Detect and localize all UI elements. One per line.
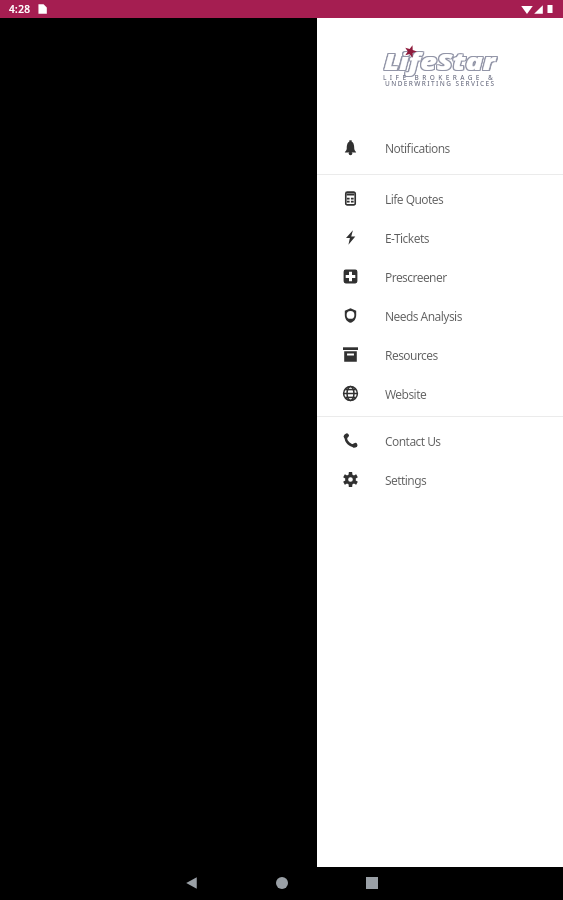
staticText: LifeStar bbox=[383, 46, 495, 76]
button[interactable]: Life Quotes bbox=[317, 179, 563, 218]
button[interactable]: Back bbox=[174, 866, 208, 899]
button[interactable]: Notifications bbox=[317, 128, 563, 167]
staticText: LifeStar bbox=[384, 46, 496, 76]
button[interactable]: Contact Us bbox=[317, 421, 563, 460]
staticText: Settings bbox=[385, 472, 427, 488]
button[interactable]: Needs Analysis bbox=[317, 296, 563, 335]
staticText: LifeStar bbox=[385, 46, 497, 76]
staticText: Website bbox=[385, 386, 427, 402]
staticText: Notifications bbox=[385, 140, 450, 156]
staticText: Needs Analysis bbox=[385, 308, 462, 324]
staticText: E-Tickets bbox=[385, 230, 429, 246]
staticText: LifeStar bbox=[384, 45, 496, 75]
button[interactable]: Settings bbox=[317, 460, 563, 499]
staticText: Prescreener bbox=[385, 269, 447, 285]
button[interactable]: Recents bbox=[355, 866, 389, 899]
staticText: Resources bbox=[385, 347, 438, 363]
staticText: LifeStar bbox=[383, 47, 495, 77]
staticText: LifeStar bbox=[385, 45, 497, 75]
staticText: 4:28 bbox=[9, 2, 31, 16]
button[interactable]: Resources bbox=[317, 335, 563, 374]
staticText: UNDERWRITING SERVICES bbox=[385, 79, 496, 88]
button[interactable]: E-Tickets bbox=[317, 218, 563, 257]
button[interactable]: Home bbox=[265, 866, 299, 899]
staticText: Life Quotes bbox=[385, 191, 444, 207]
staticText: LifeStar bbox=[384, 47, 496, 77]
staticText: LifeStar bbox=[383, 45, 495, 75]
button[interactable]: Website bbox=[317, 374, 563, 413]
staticText: LIFE BROKERAGE & bbox=[383, 73, 497, 82]
staticText: Contact Us bbox=[385, 433, 441, 449]
staticText: LifeStar bbox=[385, 47, 497, 77]
button[interactable]: Prescreener bbox=[317, 257, 563, 296]
